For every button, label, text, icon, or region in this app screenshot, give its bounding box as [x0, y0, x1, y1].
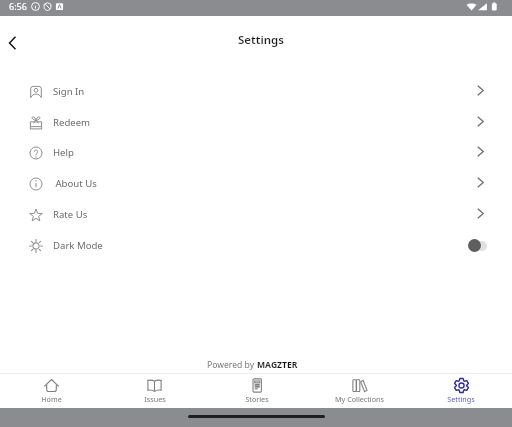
staticText: Rate Us: [53, 208, 88, 221]
staticText: Dark Mode: [53, 239, 103, 252]
button[interactable]: My Collections: [308, 378, 410, 404]
button[interactable]: Sign In: [0, 77, 512, 107]
button[interactable]: Redeem: [0, 108, 512, 138]
staticText: Settings: [238, 32, 284, 48]
button[interactable]: Settings: [410, 378, 512, 404]
button[interactable]: About Us: [0, 169, 512, 199]
button[interactable]: Rate Us: [0, 200, 512, 230]
button[interactable]: Home: [0, 378, 103, 404]
staticText: About Us: [53, 177, 97, 190]
staticText: Issues: [144, 394, 166, 404]
staticText: Redeem: [53, 116, 91, 129]
staticText: Sign In: [53, 85, 85, 98]
staticText: Settings: [447, 394, 475, 404]
button[interactable]: Stories: [206, 378, 308, 404]
staticText: MAGZTER: [257, 359, 298, 371]
button[interactable]: Back: [0, 26, 30, 60]
staticText: 6:56: [9, 0, 27, 12]
staticText: Stories: [245, 394, 269, 404]
button[interactable]: Help: [0, 138, 512, 168]
button[interactable]: Dark Mode: [0, 231, 512, 261]
staticText: Home: [41, 394, 62, 404]
button[interactable]: Issues: [103, 378, 206, 404]
staticText: Powered by: [207, 359, 257, 371]
staticText: My Collections: [335, 394, 384, 404]
staticText: Help: [53, 146, 74, 159]
